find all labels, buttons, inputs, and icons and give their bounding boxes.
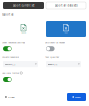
button[interactable]: Export current set [3, 2, 44, 9]
button[interactable]: Export all data sets [46, 2, 86, 9]
staticText: Export all data sets [54, 4, 77, 7]
staticText: Column Separator [2, 56, 19, 58]
button[interactable]: Export [67, 93, 86, 101]
staticText: Comma (,) [5, 63, 16, 65]
staticText: Dictionary as header [45, 41, 65, 44]
staticText: Export as [2, 13, 13, 16]
button[interactable]: Excel [3, 21, 44, 37]
staticText: Text Qualifier [45, 56, 59, 58]
staticText: Excel [21, 31, 25, 34]
button[interactable]: Double (") [46, 61, 81, 67]
button[interactable]: CSV [46, 21, 86, 37]
button[interactable]: Dictionary as header [46, 46, 55, 51]
button[interactable]: Close [5, 93, 25, 101]
staticText: Export [75, 95, 81, 99]
staticText: Show Advanced Settings [2, 41, 25, 44]
button[interactable]: Use local format [3, 77, 12, 82]
staticText: Use local format [2, 72, 19, 74]
staticText: Close [8, 95, 14, 99]
button[interactable]: Comma (,) [3, 61, 38, 67]
staticText: CSV [64, 31, 67, 34]
button[interactable]: Show Advanced Settings [3, 46, 12, 51]
staticText: Export current set [12, 4, 34, 7]
staticText: Double (") [48, 63, 58, 65]
